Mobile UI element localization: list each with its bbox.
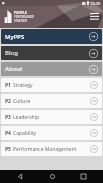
button[interactable]: Home — [41, 170, 63, 183]
staticText: P2 — [5, 98, 11, 105]
staticText: P3 — [5, 114, 11, 121]
staticText: P5 — [5, 146, 11, 153]
button[interactable]: Blog — [1, 46, 102, 60]
staticText: MyPPS — [5, 33, 25, 41]
button[interactable]: Back — [9, 170, 31, 183]
button[interactable]: About — [1, 62, 102, 76]
button[interactable]: P4 — [1, 126, 102, 140]
button[interactable]: Open navigation menu — [88, 10, 100, 22]
button[interactable]: Recent apps — [72, 170, 94, 183]
staticText: Strategy — [13, 82, 33, 89]
staticText: Blog — [5, 49, 18, 57]
staticText: Culture — [13, 98, 31, 105]
staticText: Leadership — [13, 114, 40, 121]
staticText: PERFORMANCE — [14, 15, 35, 19]
staticText: PEOPLE — [14, 10, 27, 15]
staticText: 12:30 — [90, 1, 101, 6]
staticText: STRATEGY — [14, 19, 28, 23]
button[interactable]: P5 — [1, 142, 102, 156]
staticText: Capability — [13, 130, 37, 137]
staticText: Performance Management — [13, 146, 77, 153]
button[interactable]: P3 — [1, 110, 102, 124]
staticText: P1 — [5, 82, 11, 89]
button[interactable]: P1 — [1, 78, 102, 92]
button[interactable]: P2 — [1, 94, 102, 108]
staticText: About — [5, 65, 23, 73]
button[interactable]: MyPPS — [1, 29, 102, 44]
staticText: P4 — [5, 130, 11, 137]
